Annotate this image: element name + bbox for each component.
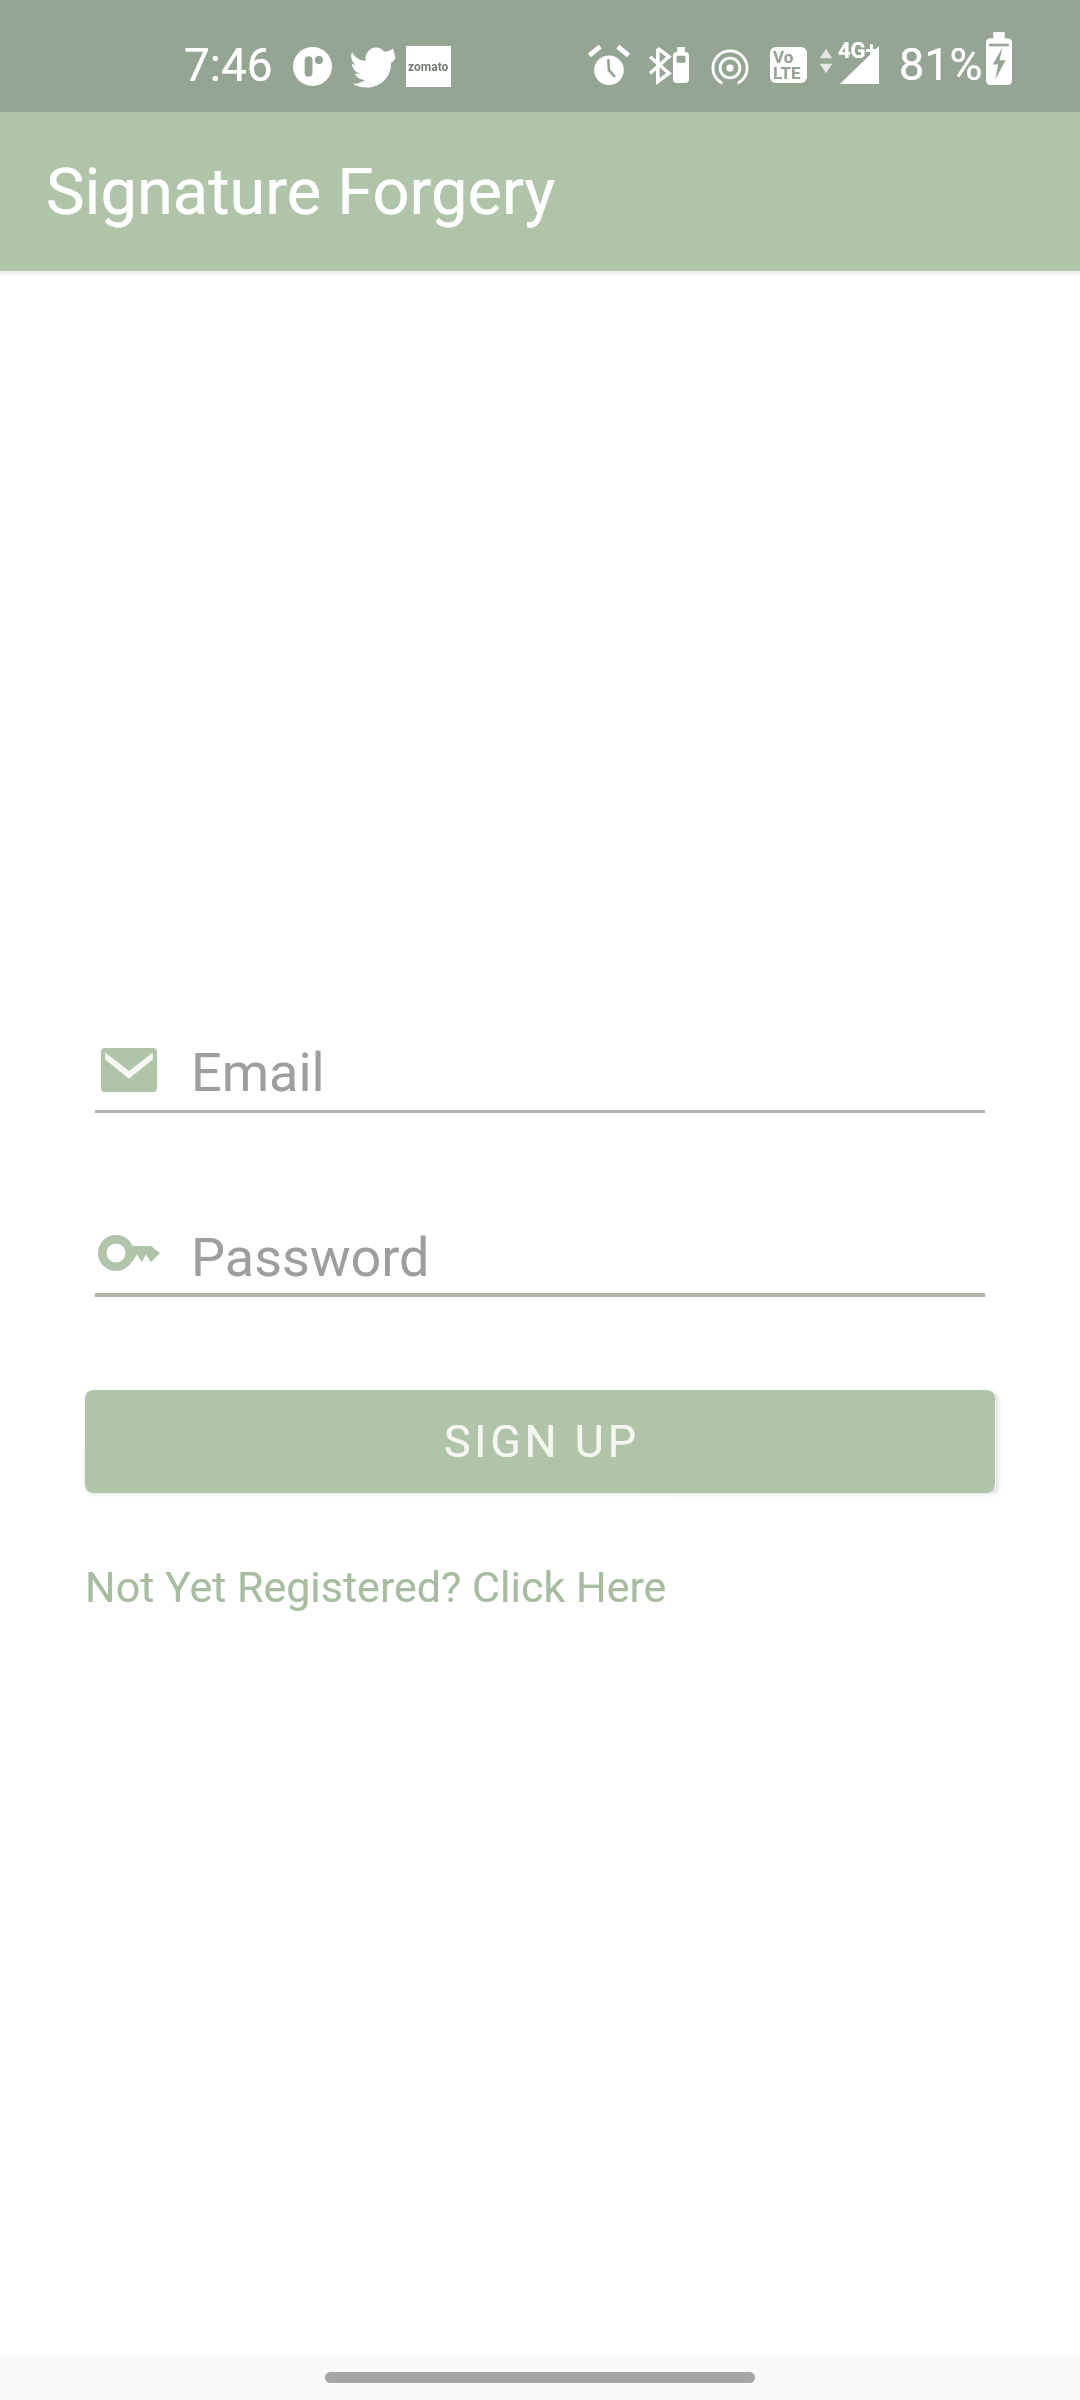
staticText: Not Yet Registered? Click Here bbox=[85, 1562, 667, 1612]
staticText: LTE bbox=[773, 63, 801, 83]
staticText: Password bbox=[191, 1226, 430, 1289]
staticText: 4G+ bbox=[838, 38, 878, 64]
button[interactable]: SIGN UP bbox=[85, 1390, 995, 1493]
button[interactable]: Email input field bbox=[95, 1030, 985, 1113]
staticText: Vo bbox=[773, 47, 794, 67]
staticText: Email bbox=[191, 1041, 325, 1104]
staticText: Signature Forgery bbox=[46, 154, 556, 230]
staticText: SIGN UP bbox=[444, 1415, 640, 1468]
staticText: 7:46 bbox=[184, 38, 273, 92]
button[interactable]: Not Yet Registered? Click Here bbox=[79, 1556, 673, 1618]
staticText: 81% bbox=[899, 38, 983, 91]
staticText: zomato bbox=[408, 60, 449, 74]
button[interactable]: Password input field bbox=[95, 1215, 985, 1297]
